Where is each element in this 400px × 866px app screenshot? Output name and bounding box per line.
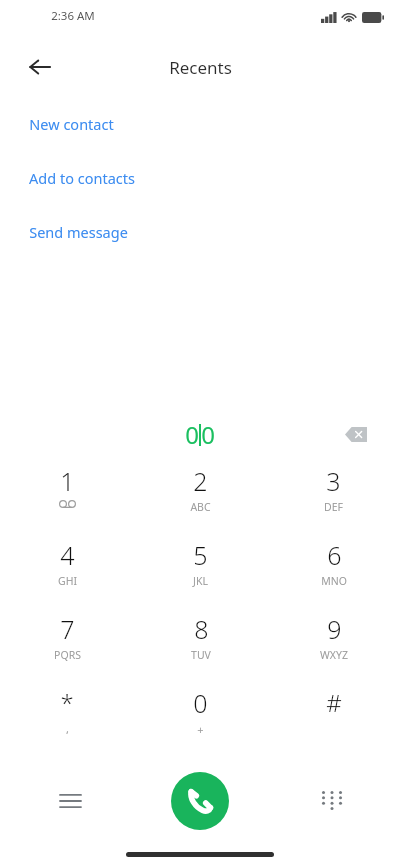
staticText: WXYZ [320,648,348,662]
button[interactable]: Call [171,772,229,830]
button[interactable]: * [0,682,134,756]
staticText: 0 [201,418,215,451]
staticText: 4 [60,538,75,572]
staticText: 0 [193,686,208,720]
button[interactable]: 6 [267,534,400,608]
staticText: PQRS [54,648,81,662]
button[interactable]: Menu [46,777,94,825]
button[interactable]: 9 [267,608,400,682]
staticText: MNO [321,574,347,588]
button[interactable]: 3 [267,460,400,534]
staticText: JKL [193,574,208,588]
button[interactable]: Send message [0,216,400,248]
staticText: TUV [191,648,211,662]
button[interactable]: 4 [0,534,134,608]
staticText: 1 [60,464,75,498]
staticText: DEF [324,500,343,514]
button[interactable]: Backspace [336,414,376,454]
staticText: 6 [327,538,342,572]
staticText: New contact [29,114,114,134]
staticText: Recents [169,56,232,79]
staticText: * [60,686,74,719]
staticText: 0 [185,418,199,451]
staticText: 5 [193,538,208,572]
staticText: ABC [190,500,211,514]
button[interactable]: 1 [0,460,134,534]
staticText: , [66,721,69,736]
staticText: 7 [60,612,75,646]
button[interactable]: Back [18,46,62,88]
button[interactable]: New contact [0,108,400,140]
staticText: + [197,722,204,737]
staticText: 2 [193,464,208,498]
staticText: 3 [326,464,341,498]
button[interactable]: 2 [134,460,267,534]
staticText: # [326,686,342,719]
button[interactable]: 5 [134,534,267,608]
staticText: 9 [327,612,342,646]
button[interactable]: Keypad [306,777,354,825]
staticText: Send message [29,222,128,242]
button[interactable]: 8 [134,608,267,682]
staticText: GHI [58,574,77,588]
button[interactable]: # [267,682,400,756]
button[interactable]: 0 [134,682,267,756]
staticText: 2:36 AM [51,8,95,24]
button[interactable]: Add to contacts [0,162,400,194]
staticText: Add to contacts [29,168,135,188]
button[interactable]: 7 [0,608,134,682]
staticText: 8 [194,612,209,646]
